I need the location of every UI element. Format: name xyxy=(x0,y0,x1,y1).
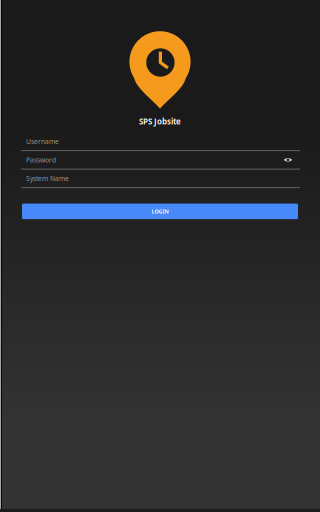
staticText: LOGIN xyxy=(151,208,168,215)
button[interactable]: Username xyxy=(21,133,300,151)
staticText: Username xyxy=(26,137,59,146)
staticText: System Name xyxy=(26,174,69,183)
staticText: SPS Jobsite xyxy=(139,116,181,127)
button[interactable]: Password xyxy=(21,151,300,170)
staticText: Password xyxy=(26,155,56,164)
button[interactable]: System Name xyxy=(21,170,300,188)
button[interactable]: LOGIN xyxy=(22,204,298,219)
